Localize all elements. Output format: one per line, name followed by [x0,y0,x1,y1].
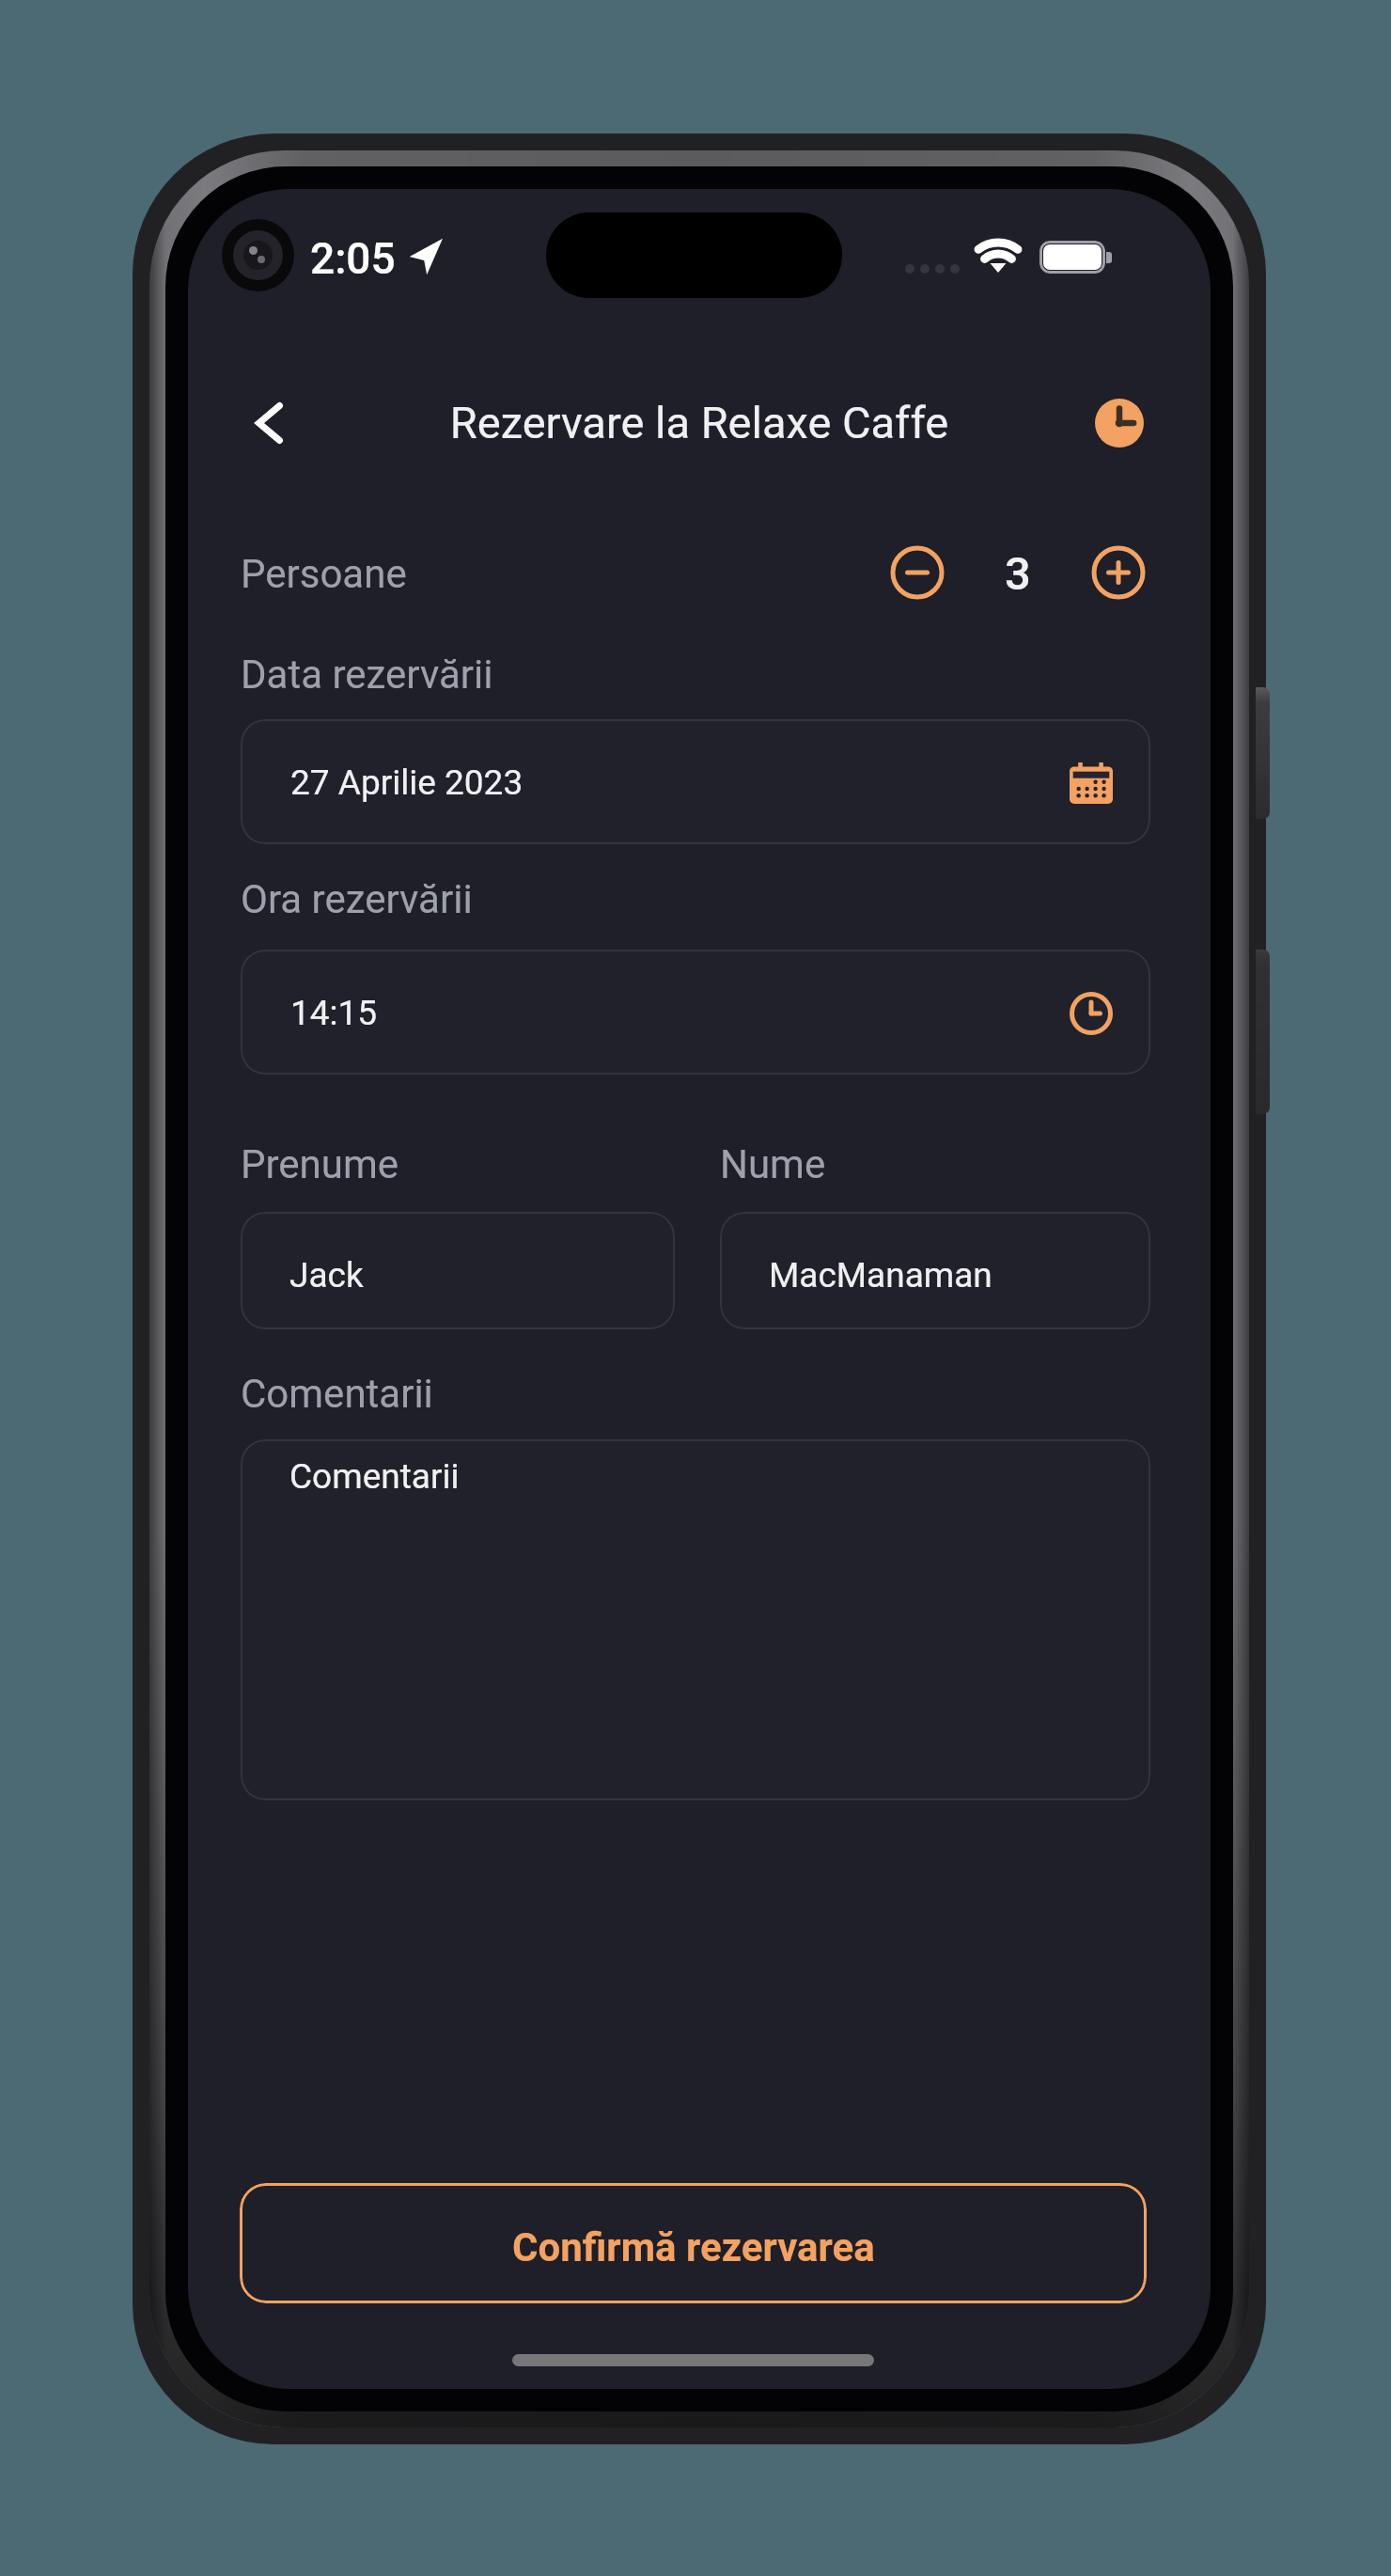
button[interactable]: Increase guests [1085,539,1152,606]
staticText: 2:05 [310,233,396,284]
button[interactable]: MacManaman [720,1212,1150,1329]
button[interactable]: 14:15 [241,950,1150,1075]
button[interactable]: 27 Aprilie 2023 [241,719,1150,844]
button[interactable]: Confirmă rezervarea [240,2183,1147,2303]
staticText: Comentarii [289,1456,460,1497]
button[interactable]: Pick date [1067,759,1116,808]
staticText: Persoane [241,551,407,597]
staticText: 27 Aprilie 2023 [290,762,524,803]
staticText: 3 [1005,547,1031,601]
staticText: Confirmă rezervarea [512,2224,875,2270]
button[interactable]: Jack [241,1212,675,1329]
staticText: Data rezervării [241,652,493,698]
staticText: Nume [720,1141,826,1187]
staticText: Rezervare la Relaxe Caffe [188,397,1211,448]
button[interactable]: Comentarii [241,1439,1150,1800]
staticText: 14:15 [290,993,378,1033]
button[interactable]: Pick time [1067,989,1116,1038]
staticText: Jack [289,1255,364,1296]
button[interactable]: Decrease guests [883,539,951,606]
button[interactable]: Back [227,381,311,464]
staticText: Comentarii [241,1371,433,1417]
staticText: MacManaman [769,1255,992,1296]
button[interactable]: Reservation history [1082,385,1157,461]
staticText: Prenume [241,1141,399,1187]
staticText: Ora rezervării [241,876,473,922]
